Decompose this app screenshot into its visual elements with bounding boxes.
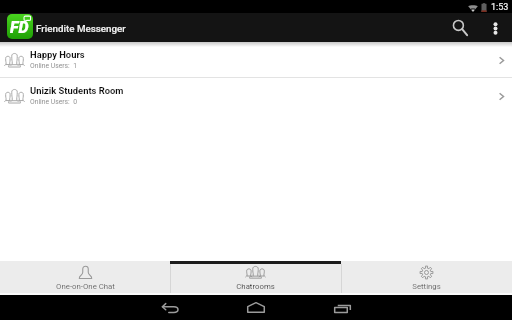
button[interactable]: More options bbox=[479, 13, 512, 42]
staticText: 1:53 bbox=[491, 2, 509, 13]
button[interactable]: Unizik Students Room bbox=[0, 78, 512, 112]
staticText: Settings bbox=[412, 282, 441, 291]
staticText: Chatrooms bbox=[236, 282, 275, 291]
button[interactable]: Chatrooms bbox=[170, 261, 341, 293]
button[interactable]: Home bbox=[213, 295, 299, 320]
button[interactable]: Settings bbox=[341, 261, 512, 293]
staticText: One-on-One Chat bbox=[56, 282, 115, 291]
button[interactable]: Recent apps bbox=[299, 295, 385, 320]
button[interactable]: Search bbox=[439, 13, 479, 42]
staticText: Unizik Students Room bbox=[30, 85, 124, 96]
staticText: Online Users: 1 bbox=[30, 62, 77, 70]
button[interactable]: Back bbox=[127, 295, 213, 320]
button[interactable]: Happy Hours bbox=[0, 42, 512, 77]
staticText: Online Users: 0 bbox=[30, 98, 77, 106]
button[interactable]: One-on-One Chat bbox=[0, 261, 170, 293]
staticText: FD bbox=[10, 18, 29, 37]
staticText: Friendite Messenger bbox=[36, 23, 126, 34]
staticText: Happy Hours bbox=[30, 49, 85, 60]
